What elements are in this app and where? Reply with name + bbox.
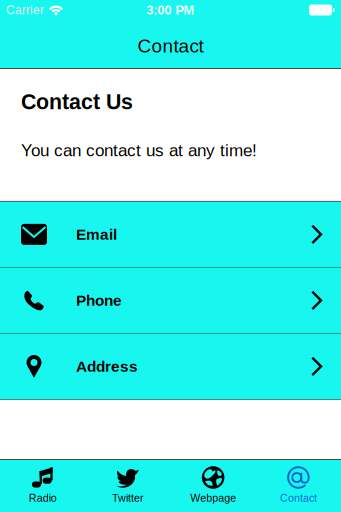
staticText: 3:00 PM (146, 3, 194, 17)
staticText: Contact (137, 35, 203, 57)
staticText: Email (76, 226, 117, 243)
staticText: Contact (280, 492, 317, 504)
staticText: You can contact us at any time! (21, 141, 257, 160)
button[interactable]: Radio (0, 460, 85, 512)
staticText: Twitter (112, 492, 144, 504)
staticText: Webpage (190, 492, 236, 504)
button[interactable]: Contact (256, 460, 341, 512)
button[interactable]: Phone (0, 268, 341, 333)
staticText: Radio (29, 492, 57, 504)
button[interactable]: Email (0, 202, 341, 267)
button[interactable]: Webpage (170, 460, 256, 512)
staticText: Contact Us (21, 90, 133, 114)
staticText: Phone (76, 292, 122, 309)
staticText: Address (76, 358, 138, 375)
button[interactable]: Address (0, 334, 341, 399)
button[interactable]: Twitter (85, 460, 170, 512)
staticText: Carrier (6, 3, 44, 17)
